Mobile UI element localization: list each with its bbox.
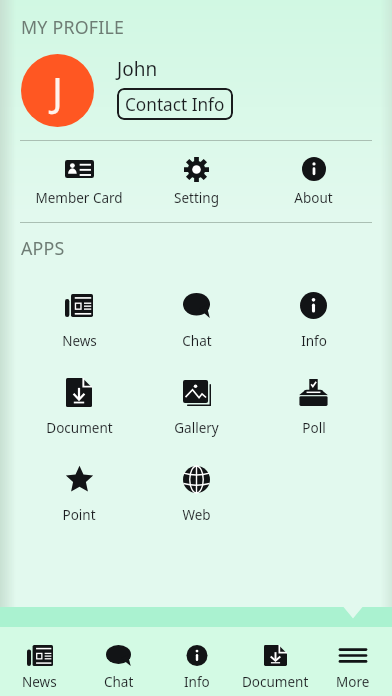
button[interactable]: Profile avatar bbox=[21, 54, 94, 127]
button[interactable]: Gallery bbox=[138, 378, 255, 437]
staticText: Member Card bbox=[35, 189, 123, 207]
staticText: Gallery bbox=[174, 419, 219, 437]
staticText: J bbox=[52, 64, 63, 118]
staticText: Contact Info bbox=[125, 93, 225, 116]
button[interactable]: Chat bbox=[79, 632, 158, 691]
button[interactable]: Setting bbox=[138, 156, 255, 207]
staticText: APPS bbox=[21, 236, 65, 260]
button[interactable]: Document bbox=[236, 632, 314, 691]
staticText: Document bbox=[242, 673, 309, 691]
button[interactable]: Chat bbox=[138, 291, 255, 350]
button[interactable]: About bbox=[255, 156, 372, 207]
button[interactable]: Point bbox=[20, 465, 138, 524]
staticText: MY PROFILE bbox=[21, 15, 125, 39]
staticText: Document bbox=[46, 419, 113, 437]
button[interactable]: Member Card bbox=[20, 156, 138, 207]
staticText: News bbox=[22, 673, 57, 691]
staticText: Info bbox=[301, 332, 327, 350]
button[interactable]: Poll bbox=[255, 378, 372, 437]
button[interactable]: Web bbox=[138, 465, 255, 524]
staticText: Setting bbox=[174, 189, 219, 207]
staticText: Poll bbox=[302, 419, 326, 437]
button[interactable]: News bbox=[0, 632, 79, 691]
staticText: About bbox=[294, 189, 333, 207]
button[interactable]: Info bbox=[158, 632, 236, 691]
staticText: Info bbox=[184, 673, 210, 691]
button[interactable]: News bbox=[20, 291, 138, 350]
button[interactable]: More bbox=[314, 632, 392, 691]
button[interactable]: Info bbox=[255, 291, 372, 350]
staticText: More bbox=[336, 673, 370, 691]
button[interactable]: Contact Info bbox=[117, 88, 233, 120]
staticText: Chat bbox=[182, 332, 212, 350]
button[interactable]: Document bbox=[20, 378, 138, 437]
staticText: Web bbox=[182, 506, 211, 524]
staticText: Point bbox=[62, 506, 96, 524]
staticText: John bbox=[117, 56, 158, 82]
staticText: Chat bbox=[104, 673, 134, 691]
staticText: News bbox=[62, 332, 97, 350]
